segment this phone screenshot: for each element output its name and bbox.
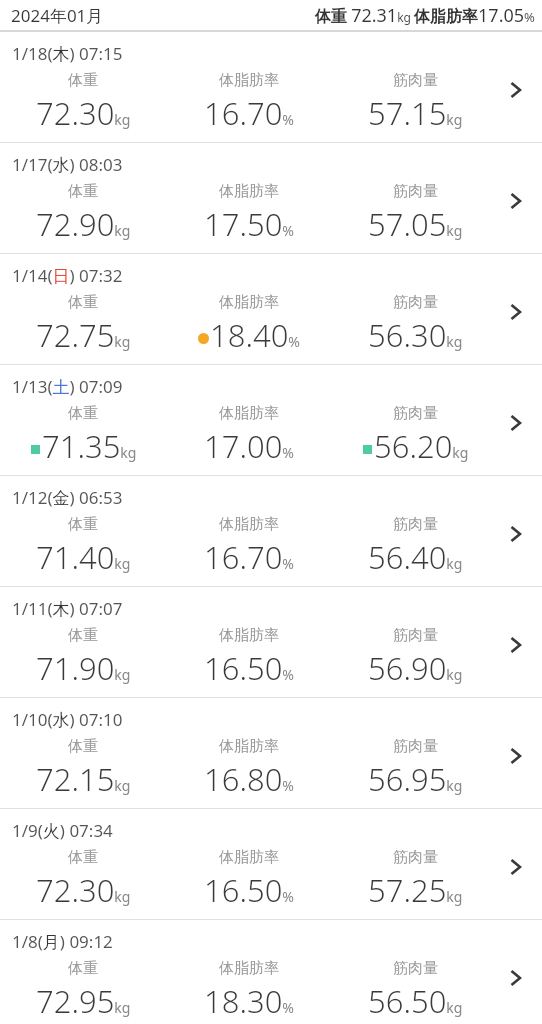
staticText: 筋肉量 [393,404,438,423]
staticText: 71.35kg [42,425,137,467]
staticText: 体重 [68,848,98,867]
staticText: 筋肉量 [393,737,438,756]
staticText: 18.40% [210,314,301,356]
staticText: 筋肉量 [393,515,438,534]
staticText: 71.90kg [36,647,131,689]
staticText: 16.50% [204,869,295,911]
button[interactable]: 1/17(水) 08:03 [0,143,542,253]
button[interactable]: 1/13(土) 07:09 [0,365,542,475]
staticText: 57.25kg [368,869,463,911]
other: 詳細を見る [498,515,542,577]
staticText: 体脂肪率 [219,182,279,201]
other: 詳細を見る [498,182,542,244]
staticText: 筋肉量 [393,959,438,978]
button[interactable]: 1/9(火) 07:34 [0,809,542,919]
staticText: 体脂肪率 [219,626,279,645]
other: 詳細を見る [498,404,542,466]
staticText: 56.40kg [368,536,463,578]
staticText: 56.20kg [374,425,469,467]
staticText: 体脂肪率 [219,404,279,423]
staticText: 1/17(水) 08:03 [12,153,123,176]
other: 詳細を見る [498,737,542,799]
staticText: 体重 [68,71,98,90]
staticText: 71.40kg [36,536,131,578]
other: 詳細を見る [498,626,542,688]
staticText: 16.80% [204,758,295,800]
staticText: 体脂肪率 [219,959,279,978]
staticText: 体重 [68,404,98,423]
staticText: 体脂肪率 [219,737,279,756]
staticText: 1/14(日) 07:32 [12,264,123,287]
button[interactable]: 1/14(日) 07:32 [0,254,542,364]
staticText: 1/8(月) 09:12 [12,930,113,953]
button[interactable]: 1/8(月) 09:12 [0,920,542,1024]
staticText: 筋肉量 [393,848,438,867]
staticText: 17.00% [204,425,295,467]
staticText: 1/11(木) 07:07 [12,597,123,620]
staticText: 体重 [68,959,98,978]
staticText: 体重 [68,293,98,312]
other: 詳細を見る [498,848,542,910]
staticText: 体重 [68,515,98,534]
button[interactable]: 1/12(金) 06:53 [0,476,542,586]
staticText: 72.75kg [36,314,131,356]
staticText: 1/10(水) 07:10 [12,708,123,731]
staticText: 72.95kg [36,980,131,1022]
staticText: 体重 72.31kg 体脂肪率17.05% [315,3,535,28]
staticText: 56.50kg [368,980,463,1022]
staticText: 57.05kg [368,203,463,245]
button[interactable]: 1/11(木) 07:07 [0,587,542,697]
other: 詳細を見る [498,959,542,1021]
staticText: 1/13(土) 07:09 [12,375,123,398]
staticText: 16.70% [204,536,295,578]
staticText: 56.95kg [368,758,463,800]
staticText: 体脂肪率 [219,293,279,312]
staticText: 体重 [68,737,98,756]
staticText: 16.70% [204,92,295,134]
staticText: 72.30kg [36,869,131,911]
staticText: 体重 [68,626,98,645]
staticText: 56.90kg [368,647,463,689]
staticText: 17.50% [204,203,295,245]
staticText: 18.30% [204,980,295,1022]
staticText: 筋肉量 [393,626,438,645]
staticText: 筋肉量 [393,182,438,201]
staticText: 57.15kg [368,92,463,134]
staticText: 筋肉量 [393,293,438,312]
staticText: 72.15kg [36,758,131,800]
staticText: 筋肉量 [393,71,438,90]
other: 詳細を見る [498,293,542,355]
staticText: 16.50% [204,647,295,689]
staticText: 体重 [68,182,98,201]
other: 詳細を見る [498,71,542,133]
staticText: 1/18(木) 07:15 [12,42,123,65]
staticText: 1/12(金) 06:53 [12,486,123,509]
staticText: 体脂肪率 [219,515,279,534]
staticText: 体脂肪率 [219,848,279,867]
staticText: 体脂肪率 [219,71,279,90]
button[interactable]: 1/18(木) 07:15 [0,32,542,142]
staticText: 56.30kg [368,314,463,356]
staticText: 72.30kg [36,92,131,134]
staticText: 1/9(火) 07:34 [12,819,113,842]
staticText: 72.90kg [36,203,131,245]
staticText: 2024年01月 [11,4,104,27]
button[interactable]: 1/10(水) 07:10 [0,698,542,808]
